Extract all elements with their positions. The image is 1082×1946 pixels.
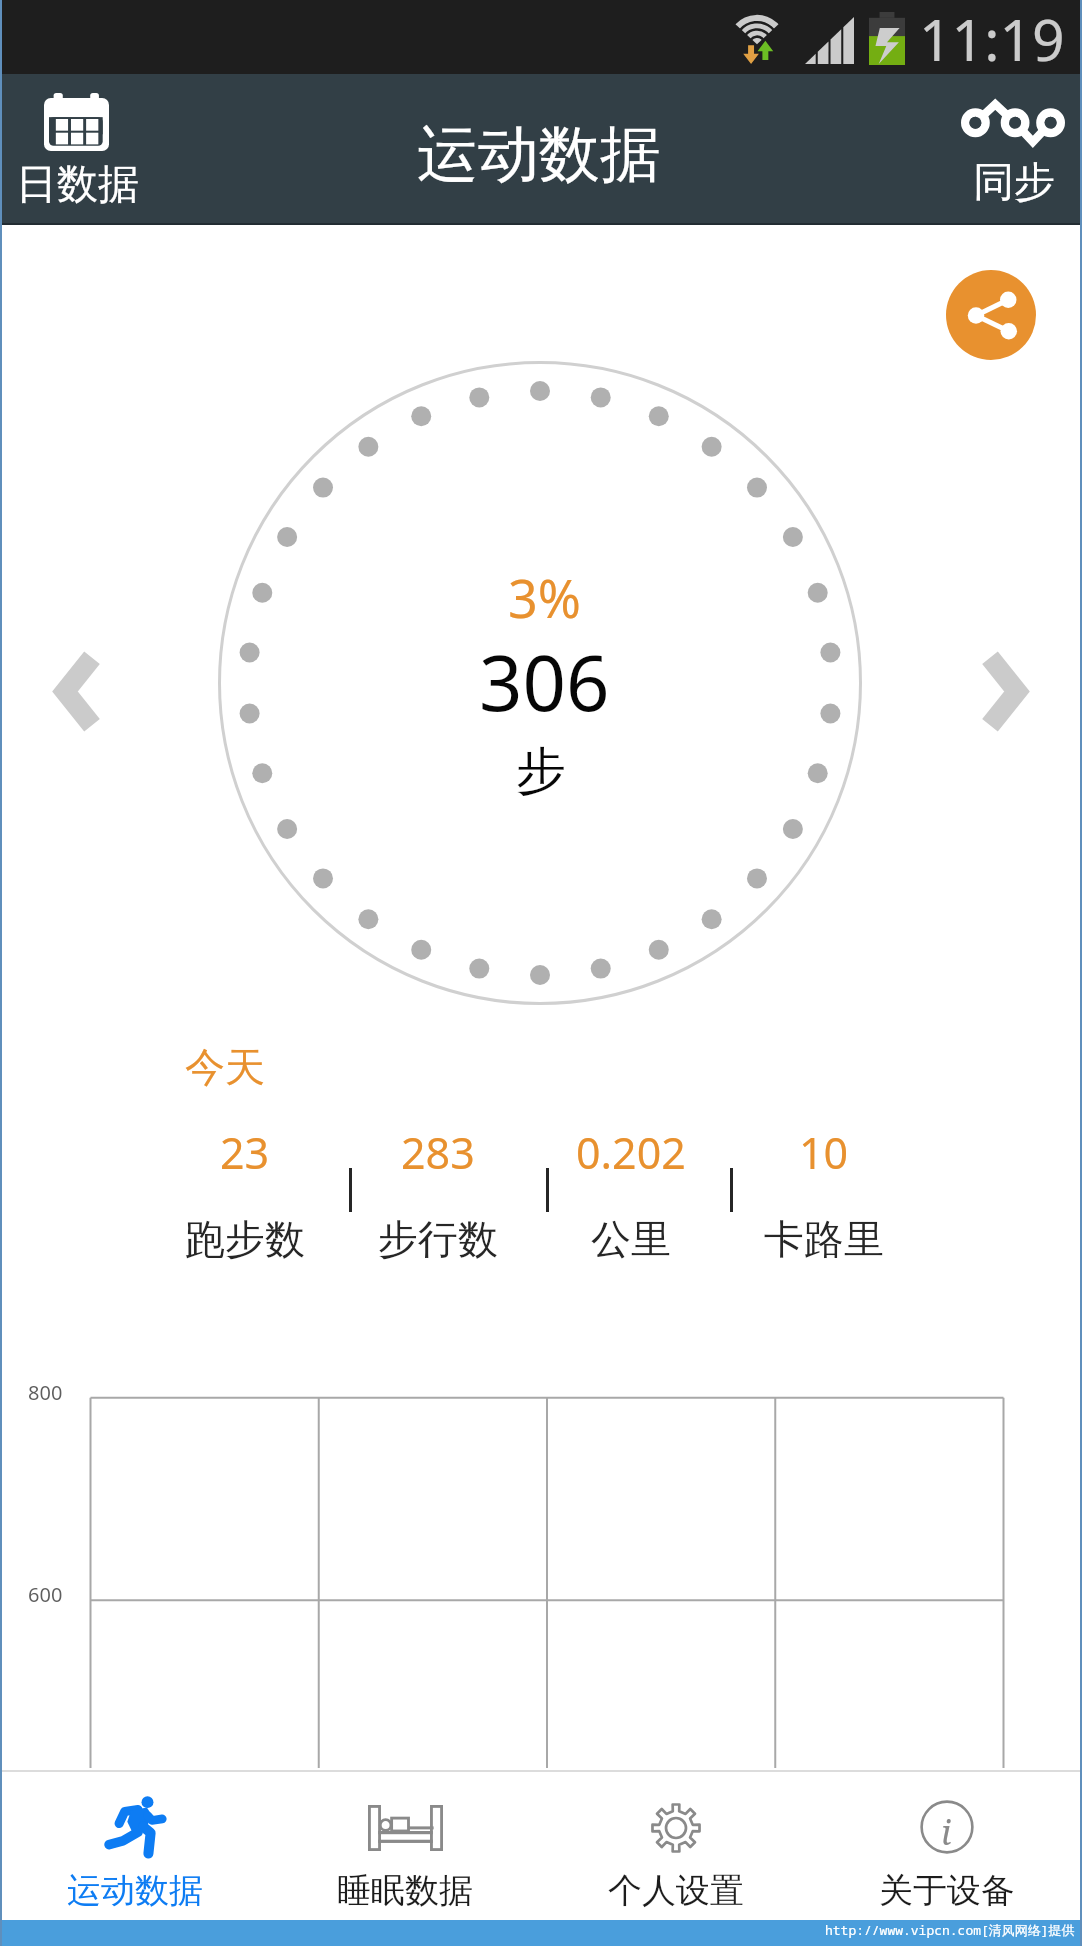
staticText: 10 bbox=[799, 1123, 849, 1182]
staticText: i bbox=[941, 1809, 952, 1855]
staticText: 0.202 bbox=[576, 1123, 686, 1182]
staticText: 步行数 bbox=[378, 1214, 498, 1264]
staticText: 运动数据 bbox=[67, 1869, 203, 1912]
button[interactable]: Day data bbox=[8, 80, 152, 216]
button[interactable]: 睡眠数据 bbox=[270, 1772, 540, 1921]
staticText: 800 bbox=[28, 1379, 63, 1406]
staticText: 个人设置 bbox=[608, 1869, 744, 1912]
staticText: 600 bbox=[28, 1581, 63, 1608]
staticText: http://www.vipcn.com[清风网络]提供 bbox=[825, 1921, 1075, 1939]
staticText: 公里 bbox=[591, 1214, 671, 1264]
staticText: 283 bbox=[401, 1123, 475, 1182]
staticText: 23 bbox=[220, 1123, 270, 1182]
button[interactable]: 个人设置 bbox=[540, 1772, 811, 1921]
button[interactable]: Sync bbox=[945, 80, 1081, 216]
staticText: 同步 bbox=[973, 157, 1055, 209]
button[interactable]: i bbox=[811, 1772, 1082, 1921]
staticText: 306 bbox=[479, 630, 610, 734]
staticText: 运动数据 bbox=[417, 116, 661, 193]
staticText: 步 bbox=[516, 740, 566, 803]
button[interactable]: Share bbox=[946, 270, 1036, 360]
staticText: 11:19 bbox=[919, 0, 1065, 74]
button[interactable]: 运动数据 bbox=[0, 1772, 270, 1921]
staticText: 跑步数 bbox=[185, 1214, 305, 1264]
button[interactable]: Previous day bbox=[53, 651, 98, 732]
staticText: 3% bbox=[508, 562, 581, 633]
staticText: 今天 bbox=[185, 1042, 265, 1092]
staticText: 卡路里 bbox=[764, 1214, 884, 1264]
staticText: 日数据 bbox=[16, 159, 139, 211]
staticText: 关于设备 bbox=[879, 1869, 1015, 1912]
button[interactable]: Next day bbox=[984, 651, 1029, 732]
staticText: 睡眠数据 bbox=[337, 1869, 473, 1912]
